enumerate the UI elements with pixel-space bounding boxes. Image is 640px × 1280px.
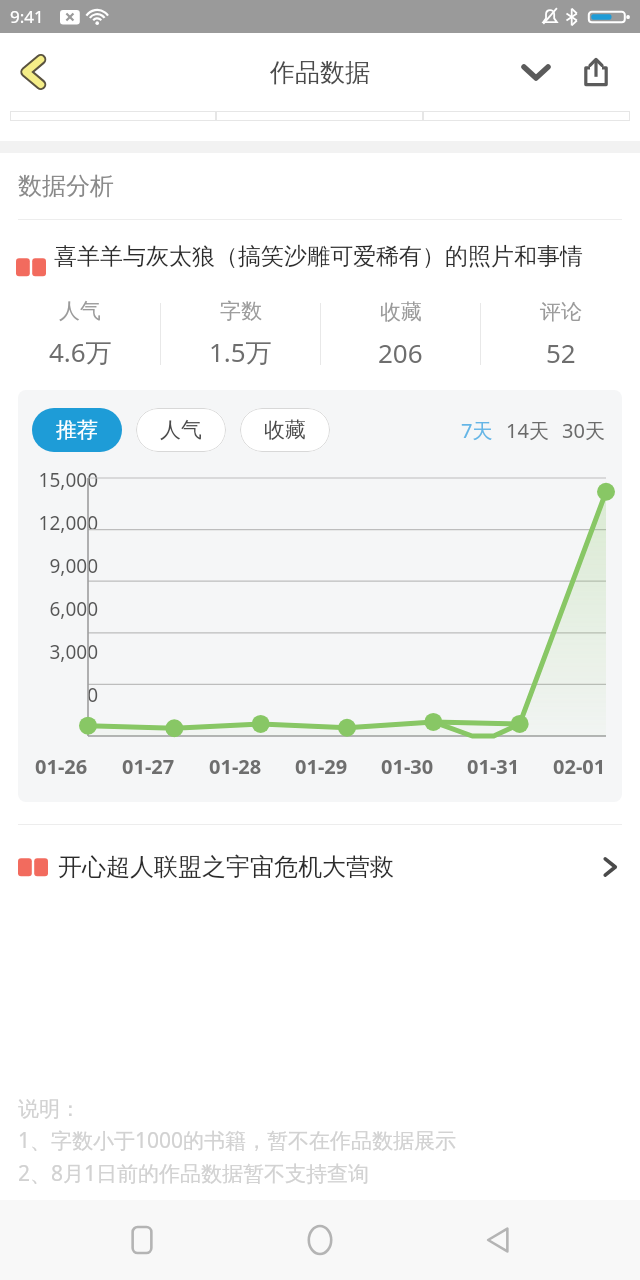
staticText: 1.5万: [209, 334, 272, 370]
staticText: 开心超人联盟之宇宙危机大营救: [58, 852, 394, 882]
staticText: 01-30: [381, 753, 434, 780]
button[interactable]: 喜羊羊与灰太狼（搞笑沙雕可爱稀有）的照片和事情: [16, 242, 640, 278]
staticText: 01-29: [295, 753, 348, 780]
button[interactable]: Share: [570, 46, 622, 98]
button[interactable]: 收藏: [240, 408, 330, 452]
button[interactable]: Expand: [510, 46, 562, 98]
staticText: 人气: [59, 298, 101, 324]
staticText: 2、8月1日前的作品数据暂不支持查询: [18, 1159, 370, 1188]
staticText: 4.6万: [49, 334, 112, 370]
button[interactable]: 7天: [458, 411, 496, 450]
staticText: 字数: [220, 298, 262, 324]
staticText: 14天: [506, 417, 549, 444]
staticText: 15,000: [28, 467, 98, 493]
staticText: 01-28: [209, 753, 262, 780]
staticText: 收藏: [264, 417, 306, 443]
staticText: 0: [28, 682, 98, 708]
staticText: 01-26: [35, 753, 88, 780]
button[interactable]: 人气: [136, 408, 226, 452]
staticText: 52: [546, 335, 576, 370]
staticText: 收藏: [380, 299, 422, 325]
button[interactable]: Recent apps: [106, 1204, 178, 1276]
staticText: 12,000: [28, 510, 98, 536]
staticText: 说明：: [18, 1096, 81, 1122]
staticText: 3,000: [28, 639, 98, 665]
staticText: 01-27: [122, 753, 175, 780]
button[interactable]: Back: [462, 1204, 534, 1276]
staticText: 推荐: [56, 417, 98, 443]
staticText: 人气: [160, 417, 202, 443]
staticText: 评论: [540, 299, 582, 325]
button[interactable]: 30天: [559, 411, 608, 450]
button[interactable]: 推荐: [32, 408, 122, 452]
staticText: 9,000: [28, 553, 98, 579]
staticText: 6,000: [28, 596, 98, 622]
staticText: 30天: [562, 417, 605, 444]
button[interactable]: Home: [284, 1204, 356, 1276]
button[interactable]: 14天: [503, 411, 552, 450]
button[interactable]: 开心超人联盟之宇宙危机大营救: [18, 825, 622, 909]
staticText: 02-01: [553, 753, 606, 780]
staticText: 01-31: [467, 753, 520, 780]
staticText: 9:41: [10, 5, 44, 28]
staticText: 作品数据: [270, 57, 370, 88]
staticText: 喜羊羊与灰太狼（搞笑沙雕可爱稀有）的照片和事情: [54, 242, 583, 271]
button[interactable]: Back: [6, 44, 62, 100]
staticText: 206: [378, 335, 423, 370]
staticText: 7天: [461, 417, 493, 444]
staticText: 数据分析: [18, 171, 114, 201]
staticText: 1、字数小于1000的书籍，暂不在作品数据展示: [18, 1126, 457, 1155]
